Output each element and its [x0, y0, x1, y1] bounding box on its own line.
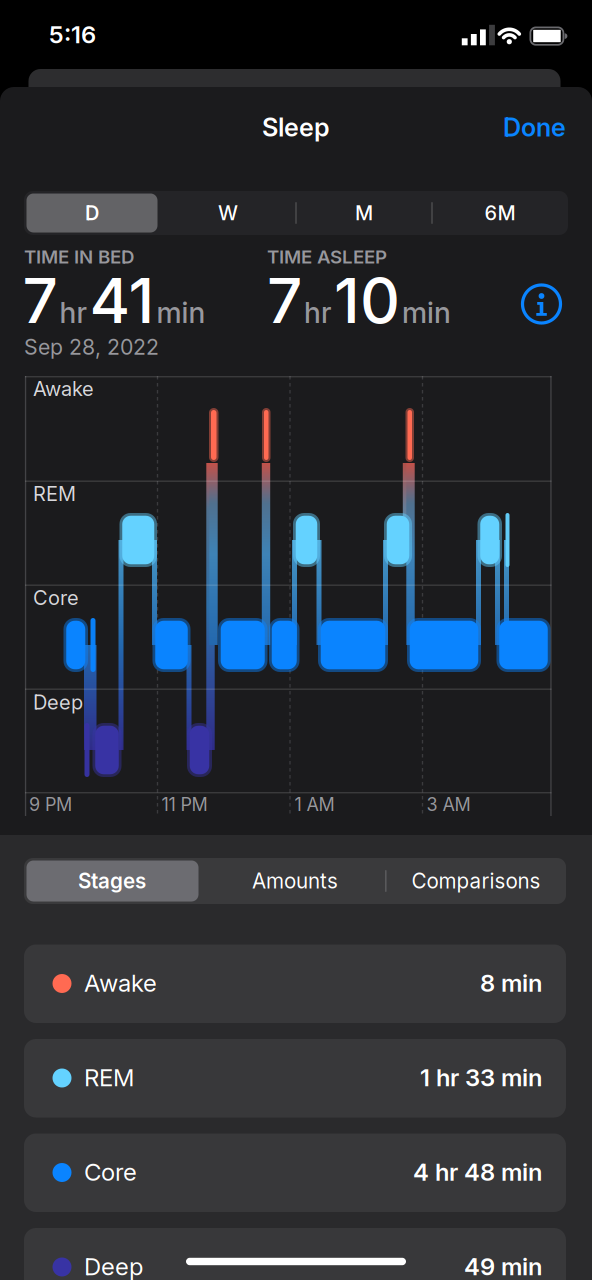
button[interactable]: Amounts [200, 858, 390, 904]
staticText: Core [33, 586, 79, 610]
button[interactable]: Deep [24, 1228, 566, 1280]
staticText: TIME IN BED [24, 245, 134, 268]
staticText: 3 AM [426, 794, 470, 815]
staticText: 6M [484, 201, 515, 225]
button[interactable]: M [296, 191, 432, 235]
staticText: Awake [84, 968, 157, 997]
staticText: Core [84, 1157, 137, 1186]
staticText: hr [59, 295, 87, 330]
button[interactable]: W [160, 191, 296, 235]
staticText: REM [33, 482, 76, 506]
staticText: 10 [334, 263, 400, 338]
staticText: Awake [33, 377, 94, 401]
staticText: hr [304, 295, 332, 330]
staticText: 49 min [464, 1252, 542, 1280]
staticText: W [218, 201, 238, 225]
staticText: Deep [84, 1252, 143, 1280]
staticText: M [355, 201, 373, 225]
staticText: Comparisons [411, 868, 540, 893]
button[interactable]: 6M [432, 191, 568, 235]
staticText: 5:16 [49, 20, 96, 49]
staticText: 1 hr 33 min [420, 1063, 542, 1092]
button[interactable]: REM [24, 1039, 566, 1117]
staticText: D [85, 201, 99, 225]
staticText: 11 PM [161, 794, 207, 815]
staticText: Deep [33, 690, 83, 714]
staticText: 7 [22, 263, 57, 338]
staticText: Sep 28, 2022 [24, 334, 159, 360]
staticText: Amounts [252, 868, 338, 893]
staticText: 1 AM [294, 794, 334, 815]
staticText: 7 [267, 263, 302, 338]
staticText: 41 [89, 263, 154, 338]
staticText: 4 hr 48 min [413, 1157, 542, 1186]
staticText: TIME ASLEEP [267, 245, 387, 268]
button[interactable]: Comparisons [382, 858, 570, 904]
button[interactable]: Awake [24, 944, 566, 1022]
staticText: Sleep [262, 112, 330, 143]
staticText: Done [503, 112, 566, 143]
staticText: min [156, 295, 205, 330]
staticText: 9 PM [29, 794, 72, 815]
button[interactable]: Core [24, 1133, 566, 1211]
staticText: 8 min [480, 968, 542, 997]
button[interactable]: Done [503, 112, 566, 143]
button[interactable] [522, 285, 560, 323]
button[interactable]: D [24, 191, 160, 235]
staticText: Stages [78, 868, 146, 893]
button[interactable]: Stages [24, 858, 200, 904]
staticText: REM [84, 1063, 134, 1092]
staticText: min [402, 295, 451, 330]
